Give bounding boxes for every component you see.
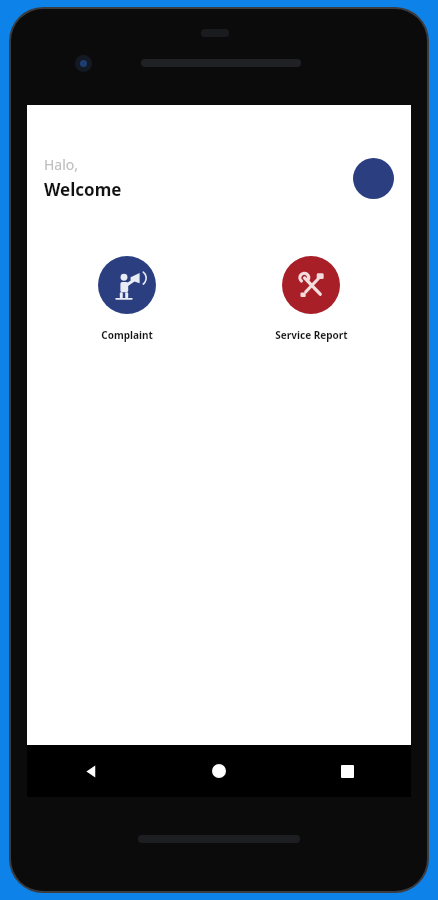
- button[interactable]: Complaint: [42, 234, 212, 366]
- button[interactable]: Home: [155, 745, 283, 797]
- staticText: Complaint: [101, 328, 153, 342]
- staticText: Welcome: [44, 178, 122, 201]
- staticText: Halo,: [44, 155, 79, 174]
- button[interactable]: Recent apps: [283, 745, 411, 797]
- button[interactable]: Profile: [353, 158, 394, 199]
- button[interactable]: Service Report: [226, 234, 396, 366]
- button[interactable]: Back: [27, 745, 155, 797]
- staticText: Service Report: [275, 328, 348, 342]
